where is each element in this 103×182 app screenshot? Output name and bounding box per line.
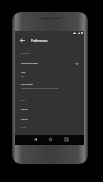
- staticText: Monday Tuesday Wednesday Friday Saturday…: [21, 87, 59, 89]
- staticText: Reminders enabled: [21, 62, 73, 65]
- button[interactable]: Home: [46, 135, 54, 143]
- button[interactable]: Backup: [15, 106, 84, 113]
- button[interactable]: Navigate up: [18, 36, 27, 45]
- button[interactable]: Recent apps: [62, 135, 70, 143]
- button[interactable]: Time: [15, 69, 84, 79]
- button[interactable]: Preferences: [28, 36, 45, 45]
- staticText: Backup: [21, 108, 28, 111]
- staticText: Days of week: [21, 83, 33, 86]
- staticText: Restore: [21, 118, 28, 121]
- button[interactable]: Back: [31, 135, 39, 143]
- button[interactable]: Reminders enabled: [15, 59, 84, 67]
- staticText: Preferences: [31, 39, 48, 43]
- button[interactable]: Restore: [15, 116, 84, 123]
- staticText: Data: [21, 99, 26, 102]
- staticText: Time: [21, 71, 26, 74]
- staticText: 6:00: [21, 75, 24, 77]
- staticText: Reminder: [21, 52, 30, 55]
- staticText: Other: [21, 126, 27, 129]
- button[interactable]: Days of week: [15, 81, 84, 91]
